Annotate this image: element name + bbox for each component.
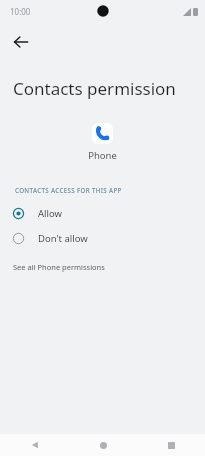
button[interactable]: Allow <box>0 201 205 226</box>
staticText: Phone <box>88 149 117 162</box>
button[interactable]: Don't allow <box>0 226 205 251</box>
button[interactable]: Home <box>69 434 137 456</box>
button[interactable]: Back <box>4 25 38 59</box>
staticText: See all Phone permissions <box>13 262 105 272</box>
button[interactable]: Recent apps <box>137 434 205 456</box>
staticText: CONTACTS ACCESS FOR THIS APP <box>15 186 122 194</box>
staticText: Contacts permission <box>13 77 176 100</box>
staticText: Don't allow <box>38 232 88 245</box>
staticText: Allow <box>38 207 62 220</box>
button[interactable]: Back <box>0 434 69 456</box>
button[interactable]: See all Phone permissions <box>0 260 205 274</box>
staticText: 10:00 <box>10 6 31 17</box>
